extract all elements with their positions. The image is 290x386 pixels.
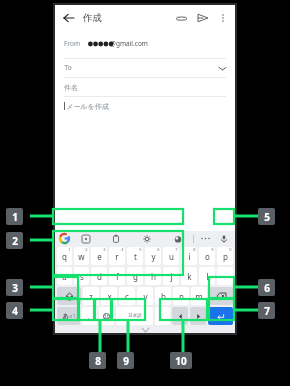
button[interactable]: p	[217, 247, 233, 265]
staticText: 1	[12, 210, 18, 224]
staticText: t	[134, 251, 137, 262]
staticText: 0	[229, 247, 232, 252]
button[interactable]: u	[163, 247, 179, 265]
staticText: 6	[264, 281, 270, 295]
staticText: 5	[139, 247, 142, 252]
staticText: 件名	[64, 83, 78, 92]
button[interactable]: y	[145, 247, 161, 265]
button[interactable]: 改行	[208, 307, 233, 325]
button[interactable]: 添付ファイル	[173, 10, 189, 26]
staticText: 1	[68, 247, 71, 252]
button[interactable]: 削除	[209, 287, 233, 305]
staticText: w	[78, 251, 85, 262]
staticText: j	[170, 271, 173, 282]
button[interactable]: d	[91, 267, 107, 285]
button[interactable]: 、	[82, 307, 97, 325]
button[interactable]: その他	[194, 231, 216, 246]
staticText: 3	[12, 281, 18, 295]
staticText: 9	[211, 247, 214, 252]
staticText: 8	[95, 354, 101, 368]
button[interactable]: 絵文字	[99, 307, 114, 325]
button[interactable]: v	[137, 287, 153, 305]
button[interactable]: To	[64, 59, 226, 77]
button[interactable]: 戻る	[61, 10, 77, 26]
button[interactable]: メールを作成	[64, 97, 226, 115]
button[interactable]: Shift	[57, 287, 81, 305]
button[interactable]: その他のオプション	[215, 10, 231, 26]
staticText: —	[221, 271, 229, 282]
button[interactable]: 日本語	[116, 307, 153, 325]
button[interactable]: 送信	[195, 10, 211, 26]
staticText: k	[187, 271, 192, 282]
button[interactable]: l	[199, 267, 215, 285]
staticText: 4	[12, 304, 18, 318]
staticText: u	[169, 251, 174, 262]
staticText: あ	[62, 312, 69, 320]
button[interactable]: a	[57, 267, 72, 285]
button[interactable]: x	[101, 287, 117, 305]
staticText: r	[115, 251, 119, 262]
button[interactable]: —	[217, 267, 233, 285]
button[interactable]: m	[191, 287, 207, 305]
staticText: a1	[69, 312, 76, 320]
button[interactable]: 左	[172, 307, 188, 325]
button[interactable]: k	[181, 267, 197, 285]
staticText: 8	[193, 247, 196, 252]
staticText: @gmail.com	[110, 39, 148, 48]
button[interactable]: h	[145, 267, 161, 285]
button[interactable]: GIF	[71, 231, 101, 246]
staticText: メールを作成	[66, 102, 109, 111]
staticText: a	[62, 271, 67, 282]
button[interactable]: e	[91, 247, 107, 265]
staticText: o	[205, 251, 210, 262]
staticText: 9	[123, 354, 129, 368]
staticText: 日本語	[128, 313, 142, 319]
button[interactable]: 入力切替	[57, 307, 80, 325]
button[interactable]: ステッカー	[162, 231, 193, 246]
button[interactable]: r	[109, 247, 125, 265]
staticText: x	[107, 291, 112, 302]
button[interactable]: 。	[155, 307, 170, 325]
staticText: s	[80, 271, 84, 282]
staticText: y	[151, 251, 156, 262]
staticText: 5	[264, 210, 270, 224]
staticText: 2	[85, 247, 88, 252]
staticText: 。	[160, 312, 166, 320]
staticText: z	[89, 291, 93, 302]
button[interactable]: 右	[190, 307, 206, 325]
staticText: q	[62, 251, 67, 262]
staticText: i	[188, 251, 191, 262]
staticText: 2	[12, 234, 18, 248]
button[interactable]: t	[127, 247, 143, 265]
button[interactable]: n	[173, 287, 189, 305]
button[interactable]: Google	[58, 231, 71, 246]
button[interactable]: j	[163, 267, 179, 285]
button[interactable]: i	[181, 247, 197, 265]
staticText: m	[195, 291, 203, 302]
button[interactable]: f	[109, 267, 125, 285]
staticText: From	[64, 39, 80, 48]
staticText: 3	[103, 247, 106, 252]
button[interactable]: c	[119, 287, 135, 305]
staticText: d	[97, 271, 102, 282]
button[interactable]: クリップボード	[101, 231, 131, 246]
button[interactable]: 音声入力	[216, 231, 232, 246]
staticText: c	[125, 291, 129, 302]
button[interactable]: z	[83, 287, 99, 305]
button[interactable]: s	[74, 267, 89, 285]
button[interactable]: 件名	[64, 78, 226, 96]
staticText: 作成	[83, 12, 102, 24]
staticText: l	[206, 271, 209, 282]
staticText: v	[143, 291, 148, 302]
staticText: 7	[175, 247, 178, 252]
staticText: p	[223, 251, 228, 262]
button[interactable]: g	[127, 267, 143, 285]
staticText: 7	[264, 304, 270, 318]
button[interactable]: q	[57, 247, 72, 265]
staticText: 10	[175, 354, 187, 368]
button[interactable]: w	[74, 247, 89, 265]
staticText: 6	[157, 247, 160, 252]
button[interactable]: 設定	[131, 231, 162, 246]
button[interactable]: o	[199, 247, 215, 265]
button[interactable]: b	[155, 287, 171, 305]
